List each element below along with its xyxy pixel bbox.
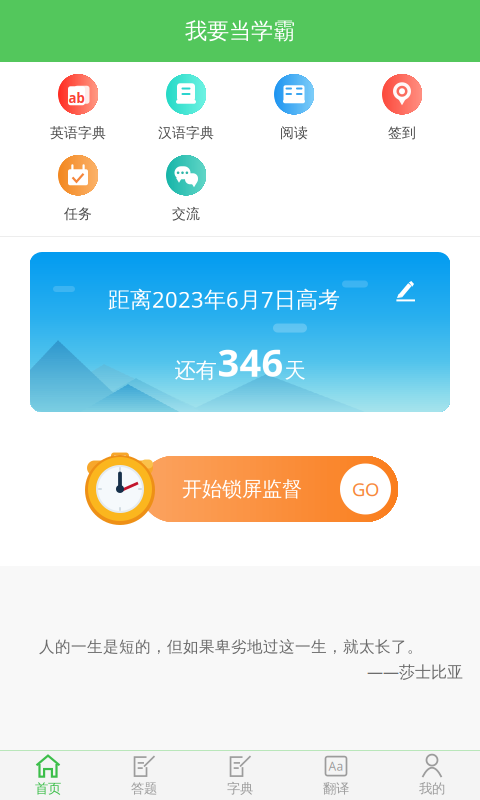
staticText: 英语字典: [50, 124, 106, 142]
staticText: 天: [284, 357, 305, 384]
staticText: GO: [352, 476, 379, 502]
staticText: 距离2023年6月7日高考: [108, 284, 340, 314]
staticText: 签到: [388, 124, 416, 142]
staticText: 翻译: [323, 780, 349, 797]
staticText: 交流: [172, 205, 200, 223]
button[interactable]: 答题: [96, 751, 192, 800]
button[interactable]: 开始锁屏监督: [140, 456, 398, 522]
button[interactable]: Aa: [288, 751, 384, 800]
button[interactable]: 汉语字典: [132, 72, 240, 144]
staticText: 答题: [131, 780, 157, 797]
button[interactable]: 任务: [24, 153, 132, 225]
button[interactable]: 字典: [192, 751, 288, 800]
button[interactable]: 首页: [0, 751, 96, 800]
staticText: 阅读: [280, 124, 308, 142]
staticText: 我的: [419, 780, 445, 797]
staticText: 还有: [174, 357, 216, 384]
staticText: 任务: [64, 205, 92, 223]
staticText: 首页: [35, 780, 61, 797]
staticText: 人的一生是短的，但如果卑劣地过这一生，就太长了。: [39, 637, 423, 657]
staticText: 我要当学霸: [185, 17, 295, 45]
button[interactable]: 签到: [348, 72, 456, 144]
staticText: Aa: [328, 758, 343, 774]
button[interactable]: 我的: [384, 751, 480, 800]
staticText: 字典: [227, 780, 253, 797]
button[interactable]: ab: [24, 72, 132, 144]
button[interactable]: 交流: [132, 153, 240, 225]
button[interactable]: 阅读: [240, 72, 348, 144]
staticText: ――莎士比亚: [367, 661, 463, 682]
staticText: 346: [217, 336, 283, 388]
staticText: 汉语字典: [158, 124, 214, 142]
staticText: 开始锁屏监督: [182, 476, 302, 502]
staticText: ab: [68, 89, 84, 107]
